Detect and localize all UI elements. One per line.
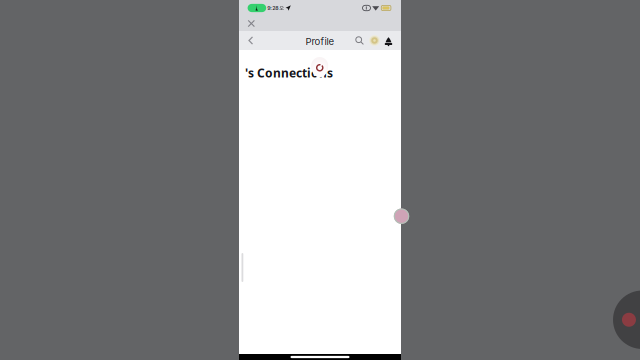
button[interactable]: Rewards (367, 31, 382, 50)
button[interactable]: Stop recording (613, 290, 640, 349)
button[interactable]: Close (243, 16, 259, 31)
staticText: 오 (279, 5, 284, 11)
staticText: 9:28 (267, 5, 278, 11)
button[interactable]: Search (352, 31, 367, 50)
button[interactable]: Back (242, 31, 259, 50)
button[interactable]: Notifications (382, 31, 395, 50)
staticText: Profile (305, 36, 334, 47)
staticText: 's Connections (245, 65, 333, 81)
